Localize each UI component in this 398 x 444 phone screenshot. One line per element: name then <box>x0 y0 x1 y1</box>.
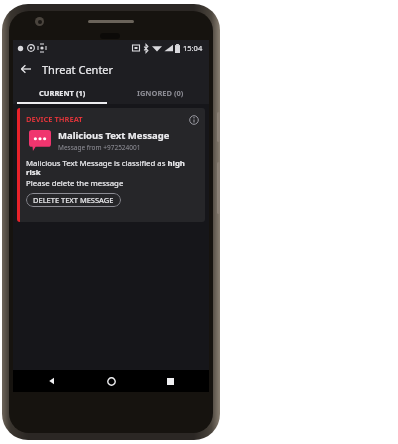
button[interactable]: IGNORED (0) <box>111 82 209 104</box>
button[interactable]: CURRENT (1) <box>13 82 111 104</box>
button[interactable]: Threat info <box>188 114 200 126</box>
staticText: DEVICE THREAT <box>26 114 83 124</box>
button[interactable]: Home <box>91 370 131 392</box>
staticText: Malicious Text Message <box>58 129 170 142</box>
staticText: CURRENT (1) <box>39 88 86 98</box>
staticText: Please delete the message <box>26 178 124 189</box>
button[interactable]: DELETE TEXT MESSAGE <box>26 193 121 207</box>
button[interactable]: Recent apps <box>150 370 190 392</box>
button[interactable]: Back <box>32 370 72 392</box>
staticText: DELETE TEXT MESSAGE <box>33 195 114 205</box>
staticText: Malicious Text Message is classified as … <box>26 158 200 178</box>
staticText: 15:04 <box>183 43 203 53</box>
button[interactable]: DEVICE THREAT <box>17 108 205 222</box>
staticText: Threat Center <box>42 62 114 77</box>
button[interactable]: Back <box>13 56 39 82</box>
staticText: IGNORED (0) <box>137 88 184 98</box>
staticText: Message from +972524001 <box>58 143 141 152</box>
